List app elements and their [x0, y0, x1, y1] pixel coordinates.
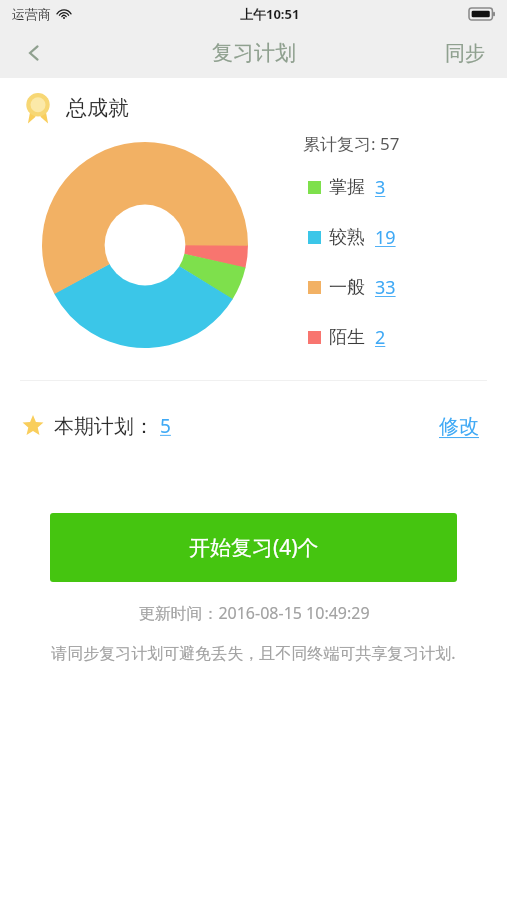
button[interactable]: 掌握: [290, 175, 507, 200]
staticText: 较熟: [329, 226, 365, 249]
staticText: 总成就: [66, 95, 129, 121]
staticText: 同步: [445, 41, 485, 66]
staticText: 33: [375, 275, 396, 300]
button[interactable]: 一般: [290, 275, 507, 300]
staticText: 更新时间：2016-08-15 10:49:29: [138, 602, 370, 624]
button[interactable]: 同步: [437, 35, 493, 72]
button[interactable]: 较熟: [290, 225, 507, 250]
staticText: 5: [160, 413, 171, 439]
button[interactable]: Back: [8, 28, 60, 78]
staticText: 陌生: [329, 326, 365, 349]
button[interactable]: 开始复习(4)个: [50, 513, 457, 582]
staticText: 上午10:51: [240, 5, 300, 23]
button[interactable]: 修改: [433, 408, 485, 445]
staticText: 请同步复习计划可避免丢失，且不同终端可共享复习计划.: [51, 642, 456, 664]
button[interactable]: 本期计划：: [22, 413, 171, 439]
button[interactable]: 陌生: [290, 325, 507, 350]
staticText: 19: [375, 225, 396, 250]
staticText: 累计复习: 57: [303, 132, 400, 155]
staticText: 掌握: [329, 176, 365, 199]
staticText: 本期计划：: [54, 414, 154, 439]
staticText: 修改: [439, 414, 479, 439]
staticText: 运营商: [12, 6, 51, 22]
staticText: 3: [375, 175, 386, 200]
staticText: 复习计划: [212, 40, 296, 66]
staticText: 开始复习(4)个: [189, 533, 319, 562]
staticText: 2: [375, 325, 386, 350]
staticText: 一般: [329, 276, 365, 299]
